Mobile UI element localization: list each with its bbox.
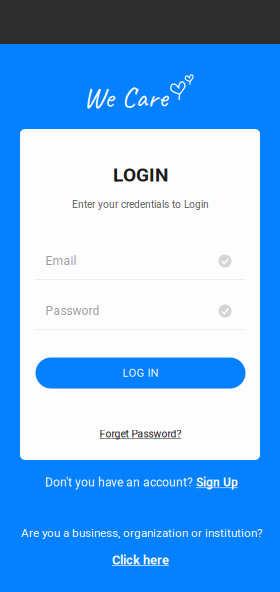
staticText: Password [45, 304, 99, 318]
staticText: Email [45, 254, 76, 268]
staticText: Enter your credentials to Login [72, 199, 209, 210]
staticText: Sign Up [196, 475, 238, 490]
staticText: Forget Password? [99, 428, 181, 440]
staticText: Don't you have an account? [45, 475, 196, 490]
staticText: Are you a business, organization or inst… [21, 526, 263, 540]
button[interactable]: LOG IN [35, 357, 245, 388]
staticText: LOG IN [122, 366, 158, 379]
button[interactable]: Password [35, 300, 244, 330]
button[interactable]: Forget Password? [87, 420, 193, 448]
staticText: Click here [112, 552, 169, 567]
button[interactable]: Click here [100, 544, 181, 575]
staticText: We Care [83, 78, 168, 115]
staticText: LOGIN [113, 164, 168, 186]
button[interactable]: Don't you have an account? [37, 467, 246, 498]
button[interactable]: Email [35, 250, 244, 280]
